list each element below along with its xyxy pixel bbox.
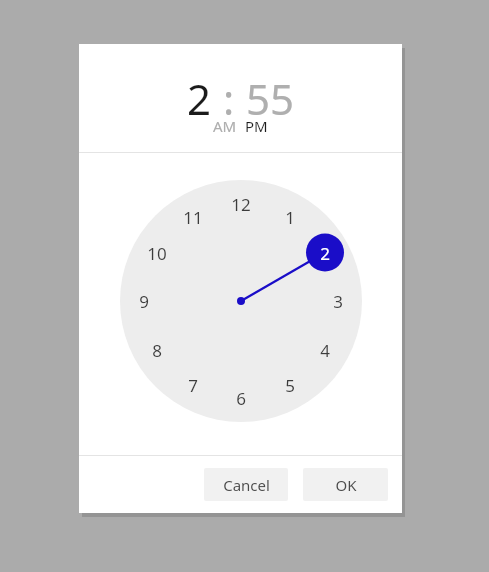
staticText: AM	[213, 116, 237, 136]
button[interactable]: 8	[138, 331, 176, 369]
staticText: 2	[320, 242, 330, 265]
button[interactable]: 12	[222, 185, 260, 223]
staticText: 55	[246, 70, 295, 127]
staticText: OK	[335, 475, 357, 495]
staticText: 2	[187, 70, 212, 127]
button[interactable]: 55	[246, 70, 295, 127]
staticText: 4	[320, 339, 330, 362]
button[interactable]: PM	[241, 116, 272, 136]
button[interactable]: 11	[174, 198, 212, 236]
staticText: 3	[333, 290, 343, 313]
staticText: 6	[236, 387, 246, 410]
button[interactable]: AM	[209, 116, 241, 136]
staticText: 7	[188, 374, 198, 397]
staticText: PM	[245, 116, 268, 136]
button[interactable]: 7	[174, 366, 212, 404]
staticText: 10	[147, 242, 167, 265]
button[interactable]: Cancel	[204, 468, 288, 501]
button[interactable]: OK	[303, 468, 388, 501]
staticText: 9	[139, 290, 149, 313]
button[interactable]: 6	[222, 379, 260, 417]
button[interactable]: 2	[306, 234, 344, 272]
staticText: 1	[285, 206, 295, 229]
staticText: 12	[231, 193, 251, 216]
staticText: 8	[152, 339, 162, 362]
staticText: :	[212, 70, 246, 127]
button[interactable]: 2	[187, 70, 212, 127]
button[interactable]: 4	[306, 331, 344, 369]
button[interactable]: 5	[271, 366, 309, 404]
staticText: 5	[285, 374, 295, 397]
staticText: 11	[183, 206, 203, 229]
button[interactable]: 10	[138, 234, 176, 272]
button[interactable]: 3	[319, 282, 357, 320]
staticText: Cancel	[223, 475, 270, 495]
button[interactable]: 9	[125, 282, 163, 320]
button[interactable]: 1	[271, 198, 309, 236]
